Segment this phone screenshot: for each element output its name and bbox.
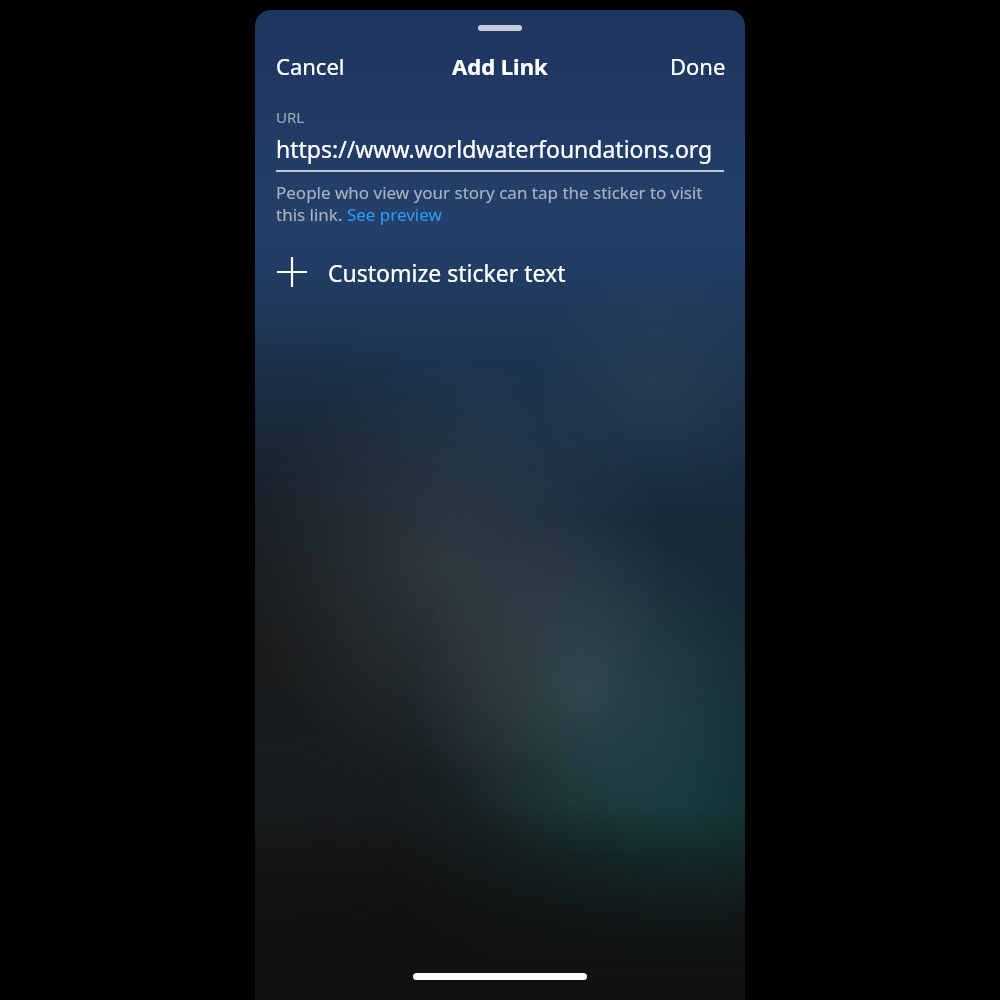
staticText: People who view your story can tap the s…: [276, 181, 724, 226]
button[interactable]: URL: [255, 107, 745, 172]
other: Add: [276, 256, 308, 288]
button[interactable]: People who view your story can tap the s…: [276, 181, 724, 226]
staticText: Cancel: [276, 51, 345, 81]
staticText: Customize sticker text: [328, 257, 566, 288]
staticText: https://www.worldwaterfoundations.org: [276, 133, 713, 164]
button[interactable]: Cancel: [255, 45, 355, 87]
button[interactable]: Done: [660, 45, 745, 87]
button[interactable]: Add: [255, 246, 745, 298]
staticText: Done: [670, 51, 726, 81]
staticText: URL: [276, 107, 305, 127]
staticText: Add Link: [452, 51, 548, 81]
